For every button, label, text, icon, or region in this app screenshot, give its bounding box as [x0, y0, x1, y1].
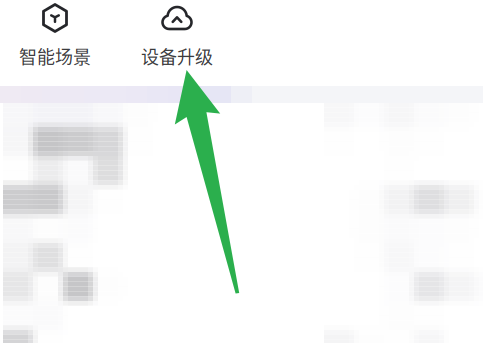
button[interactable]: 设备升级 [125, 0, 229, 74]
staticText: 智能场景 [19, 43, 91, 69]
staticText: 设备升级 [141, 43, 213, 69]
button[interactable]: 智能场景 [3, 0, 107, 74]
